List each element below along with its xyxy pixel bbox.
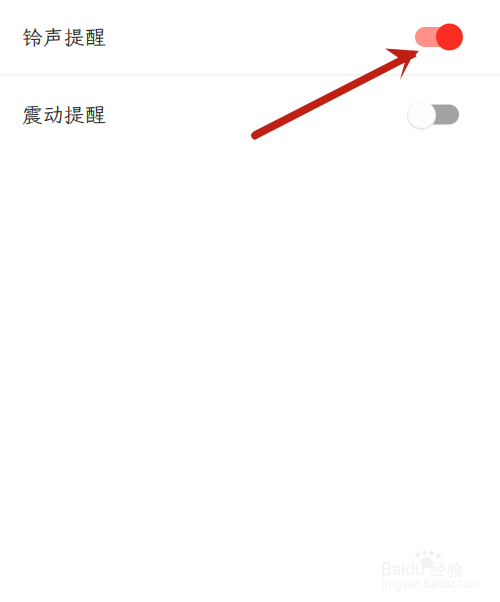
staticText: jingyan.baidu.com <box>382 577 480 591</box>
button[interactable]: 铃声提醒, on <box>415 23 463 51</box>
staticText: 震动提醒 <box>22 101 106 128</box>
button[interactable]: 铃声提醒 <box>0 0 500 74</box>
button[interactable]: 震动提醒, off <box>415 100 463 128</box>
staticText: 铃声提醒 <box>22 23 106 51</box>
button[interactable]: 震动提醒 <box>0 76 500 153</box>
staticText: Baidu 经验 <box>381 559 464 580</box>
